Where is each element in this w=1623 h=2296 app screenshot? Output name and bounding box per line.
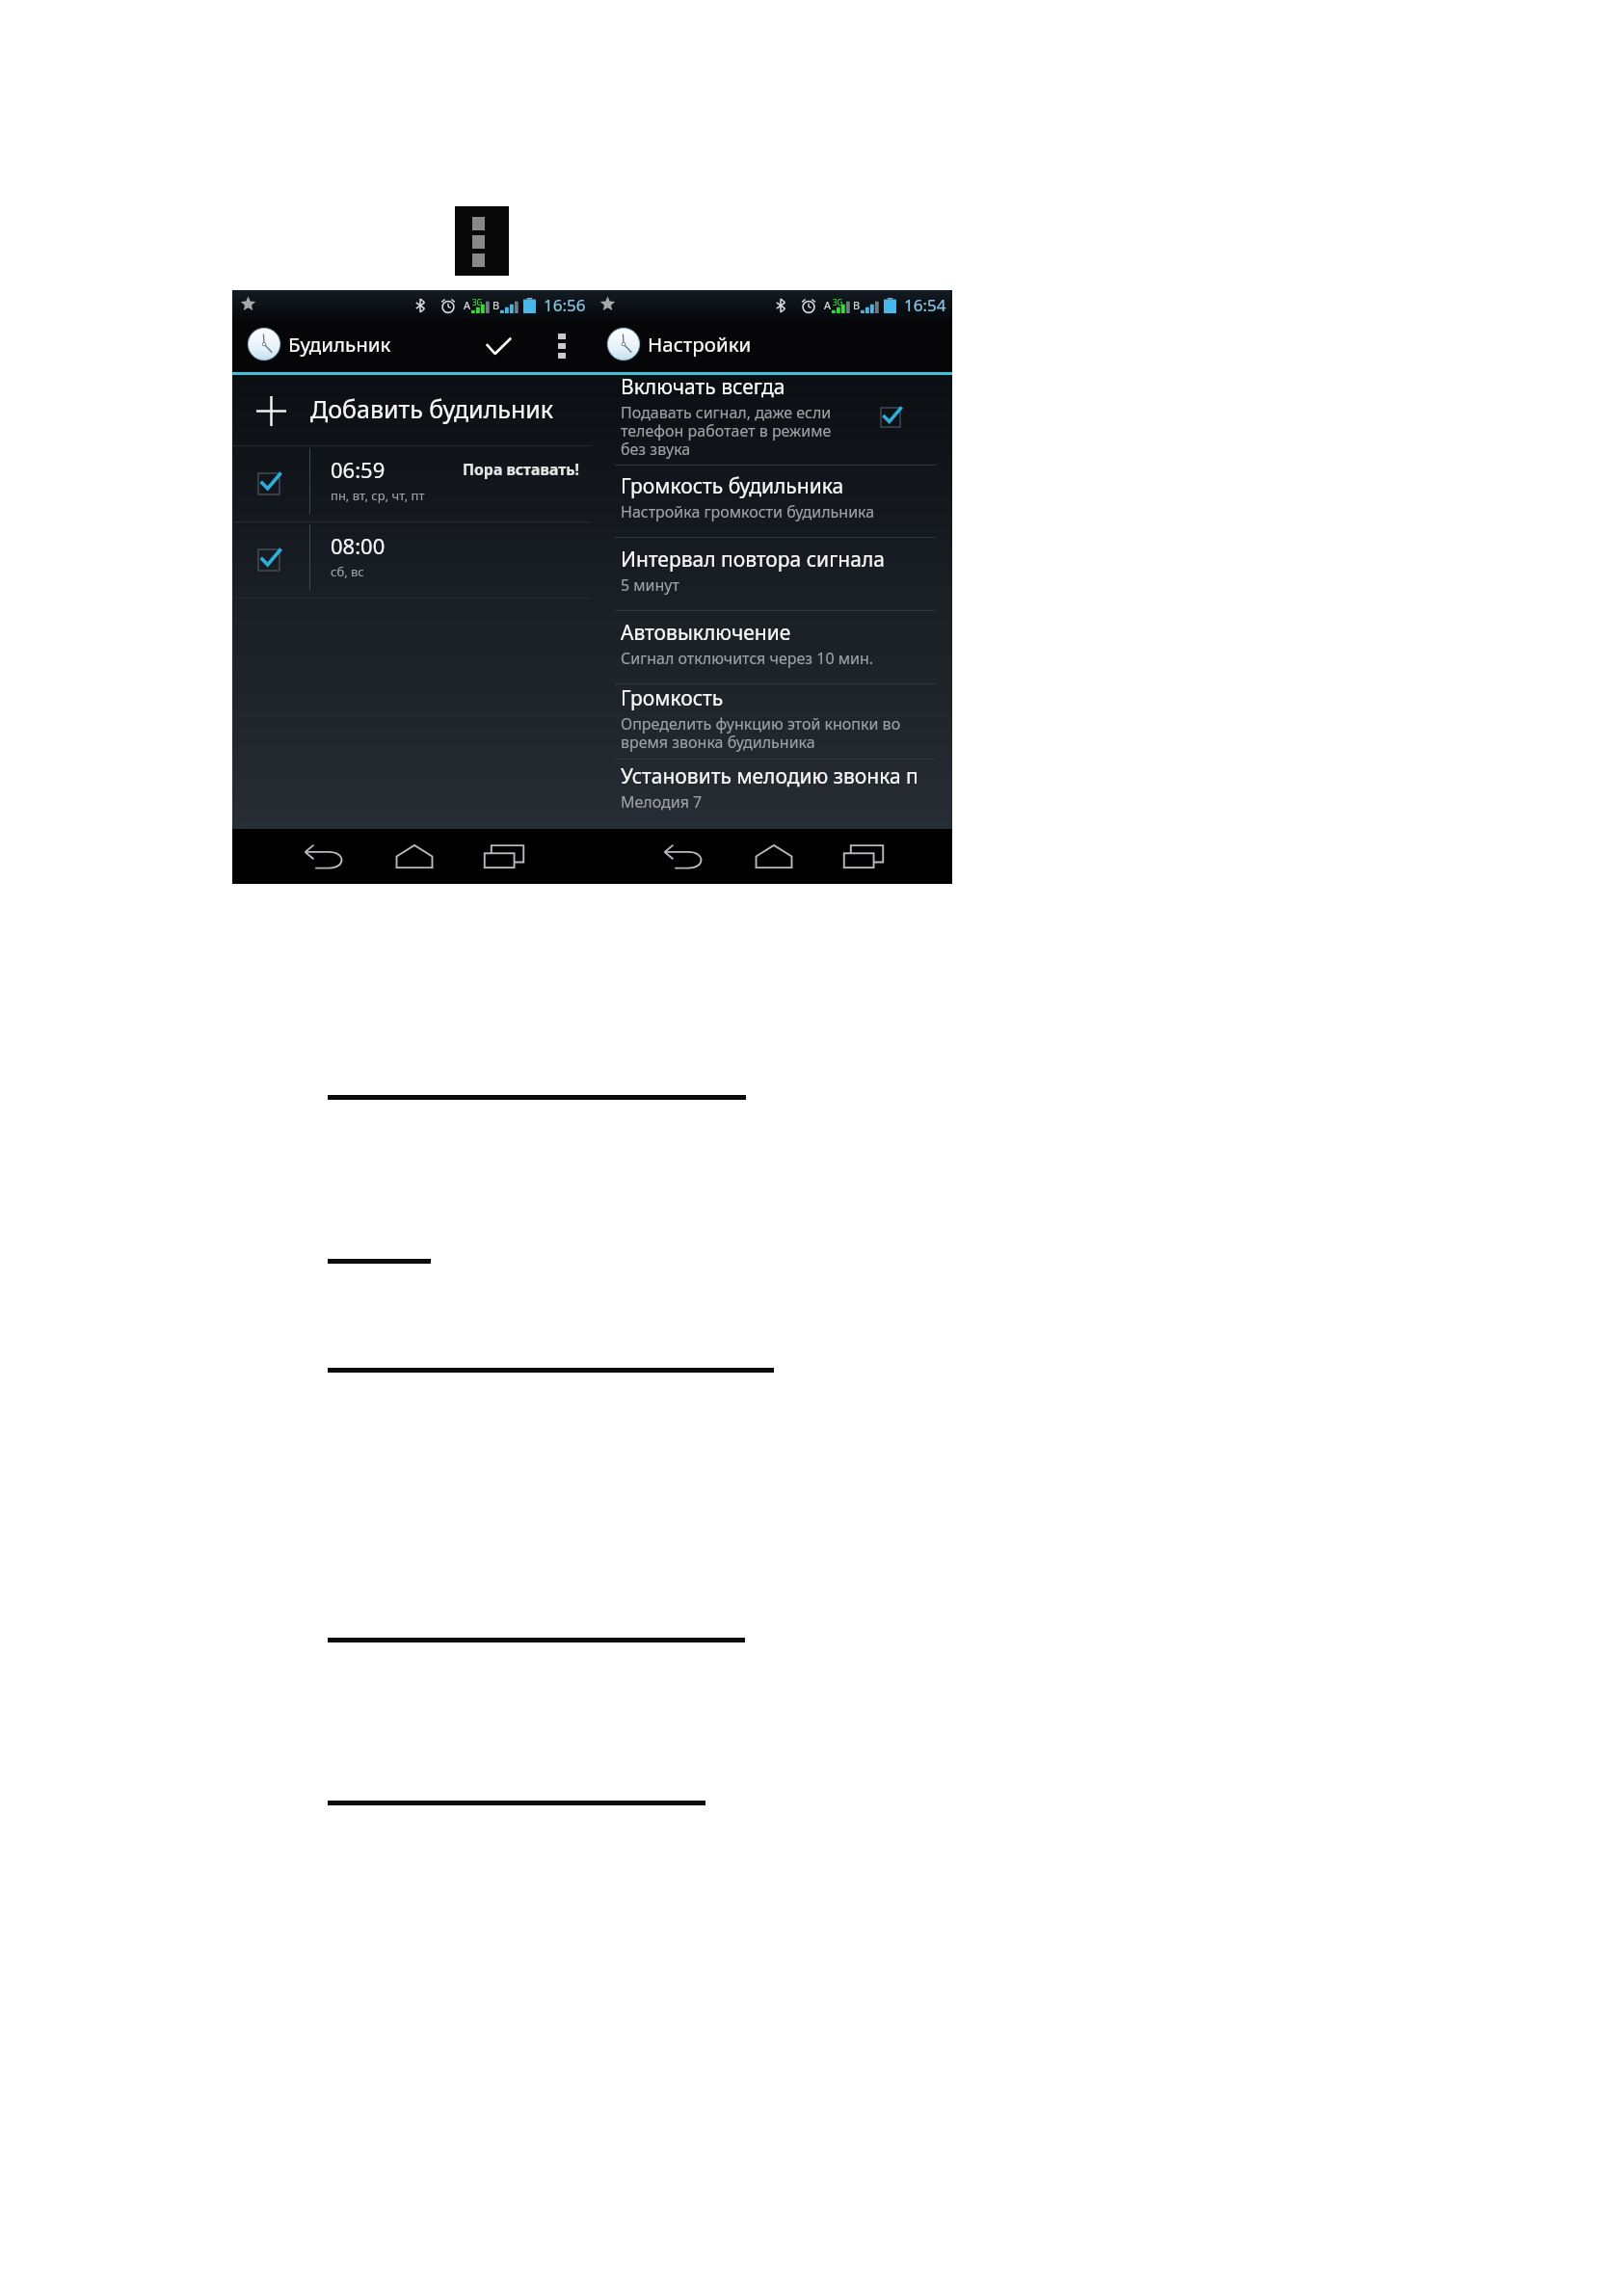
staticText: B bbox=[492, 298, 500, 312]
staticText: 5 минут bbox=[621, 574, 679, 596]
button[interactable]: Back bbox=[279, 829, 369, 884]
button[interactable]: Toggle alarm bbox=[243, 522, 294, 598]
button[interactable]: Установить мелодию звонка п bbox=[592, 760, 952, 823]
staticText: Громкость bbox=[621, 684, 724, 712]
staticText: пн, вт, ср, чт, пт bbox=[331, 487, 425, 504]
staticText: Настройки bbox=[648, 331, 752, 358]
button[interactable]: Done bbox=[465, 319, 524, 372]
staticText: Сигнал отключится через 10 мин. bbox=[621, 648, 874, 669]
staticText: 16:54 bbox=[904, 294, 946, 316]
button[interactable]: Toggle bbox=[862, 372, 919, 462]
button[interactable]: Автовыключение bbox=[592, 611, 952, 683]
button[interactable]: Интервал повтора сигнала bbox=[592, 538, 952, 610]
button[interactable]: Home bbox=[369, 829, 459, 884]
staticText: Громкость будильника bbox=[621, 472, 844, 500]
staticText: Определить функцию этой кнопки во время … bbox=[621, 713, 901, 752]
staticText: A bbox=[824, 298, 832, 312]
staticText: 08:00 bbox=[331, 531, 386, 560]
staticText: A bbox=[464, 298, 471, 312]
staticText: Мелодия 7 bbox=[621, 791, 703, 813]
button[interactable]: Toggle alarm bbox=[232, 522, 592, 598]
staticText: сб, вс bbox=[331, 563, 364, 580]
staticText: 16:56 bbox=[544, 294, 586, 316]
staticText: Установить мелодию звонка п bbox=[621, 762, 918, 790]
staticText: 3G bbox=[472, 297, 483, 307]
button[interactable]: Toggle alarm bbox=[243, 446, 294, 521]
button[interactable]: More options bbox=[545, 319, 578, 372]
staticText: Добавить будильник bbox=[310, 392, 554, 425]
staticText: 3G bbox=[833, 297, 843, 307]
staticText: Подавать сигнал, даже если телефон работ… bbox=[621, 402, 832, 459]
button[interactable]: Back bbox=[638, 829, 729, 884]
button[interactable]: Громкость bbox=[592, 684, 952, 759]
staticText: Интервал повтора сигнала bbox=[621, 546, 885, 574]
button[interactable]: Recent apps bbox=[818, 829, 909, 884]
button[interactable]: Toggle alarm bbox=[232, 446, 592, 521]
staticText: Настройка громкости будильника bbox=[621, 501, 875, 522]
button[interactable]: Home bbox=[729, 829, 818, 884]
staticText: Пора вставать! bbox=[463, 459, 579, 480]
button[interactable]: Включать всегда bbox=[592, 375, 952, 465]
staticText: Будильник bbox=[288, 331, 391, 358]
staticText: B bbox=[853, 298, 861, 312]
staticText: Автовыключение bbox=[621, 619, 791, 647]
staticText: 06:59 bbox=[331, 455, 386, 484]
button[interactable]: Добавить будильник bbox=[232, 375, 592, 445]
button[interactable]: More options bbox=[455, 206, 509, 276]
staticText: Включать всегда bbox=[621, 373, 785, 401]
button[interactable]: Recent apps bbox=[459, 829, 549, 884]
button[interactable]: Громкость будильника bbox=[592, 466, 952, 537]
